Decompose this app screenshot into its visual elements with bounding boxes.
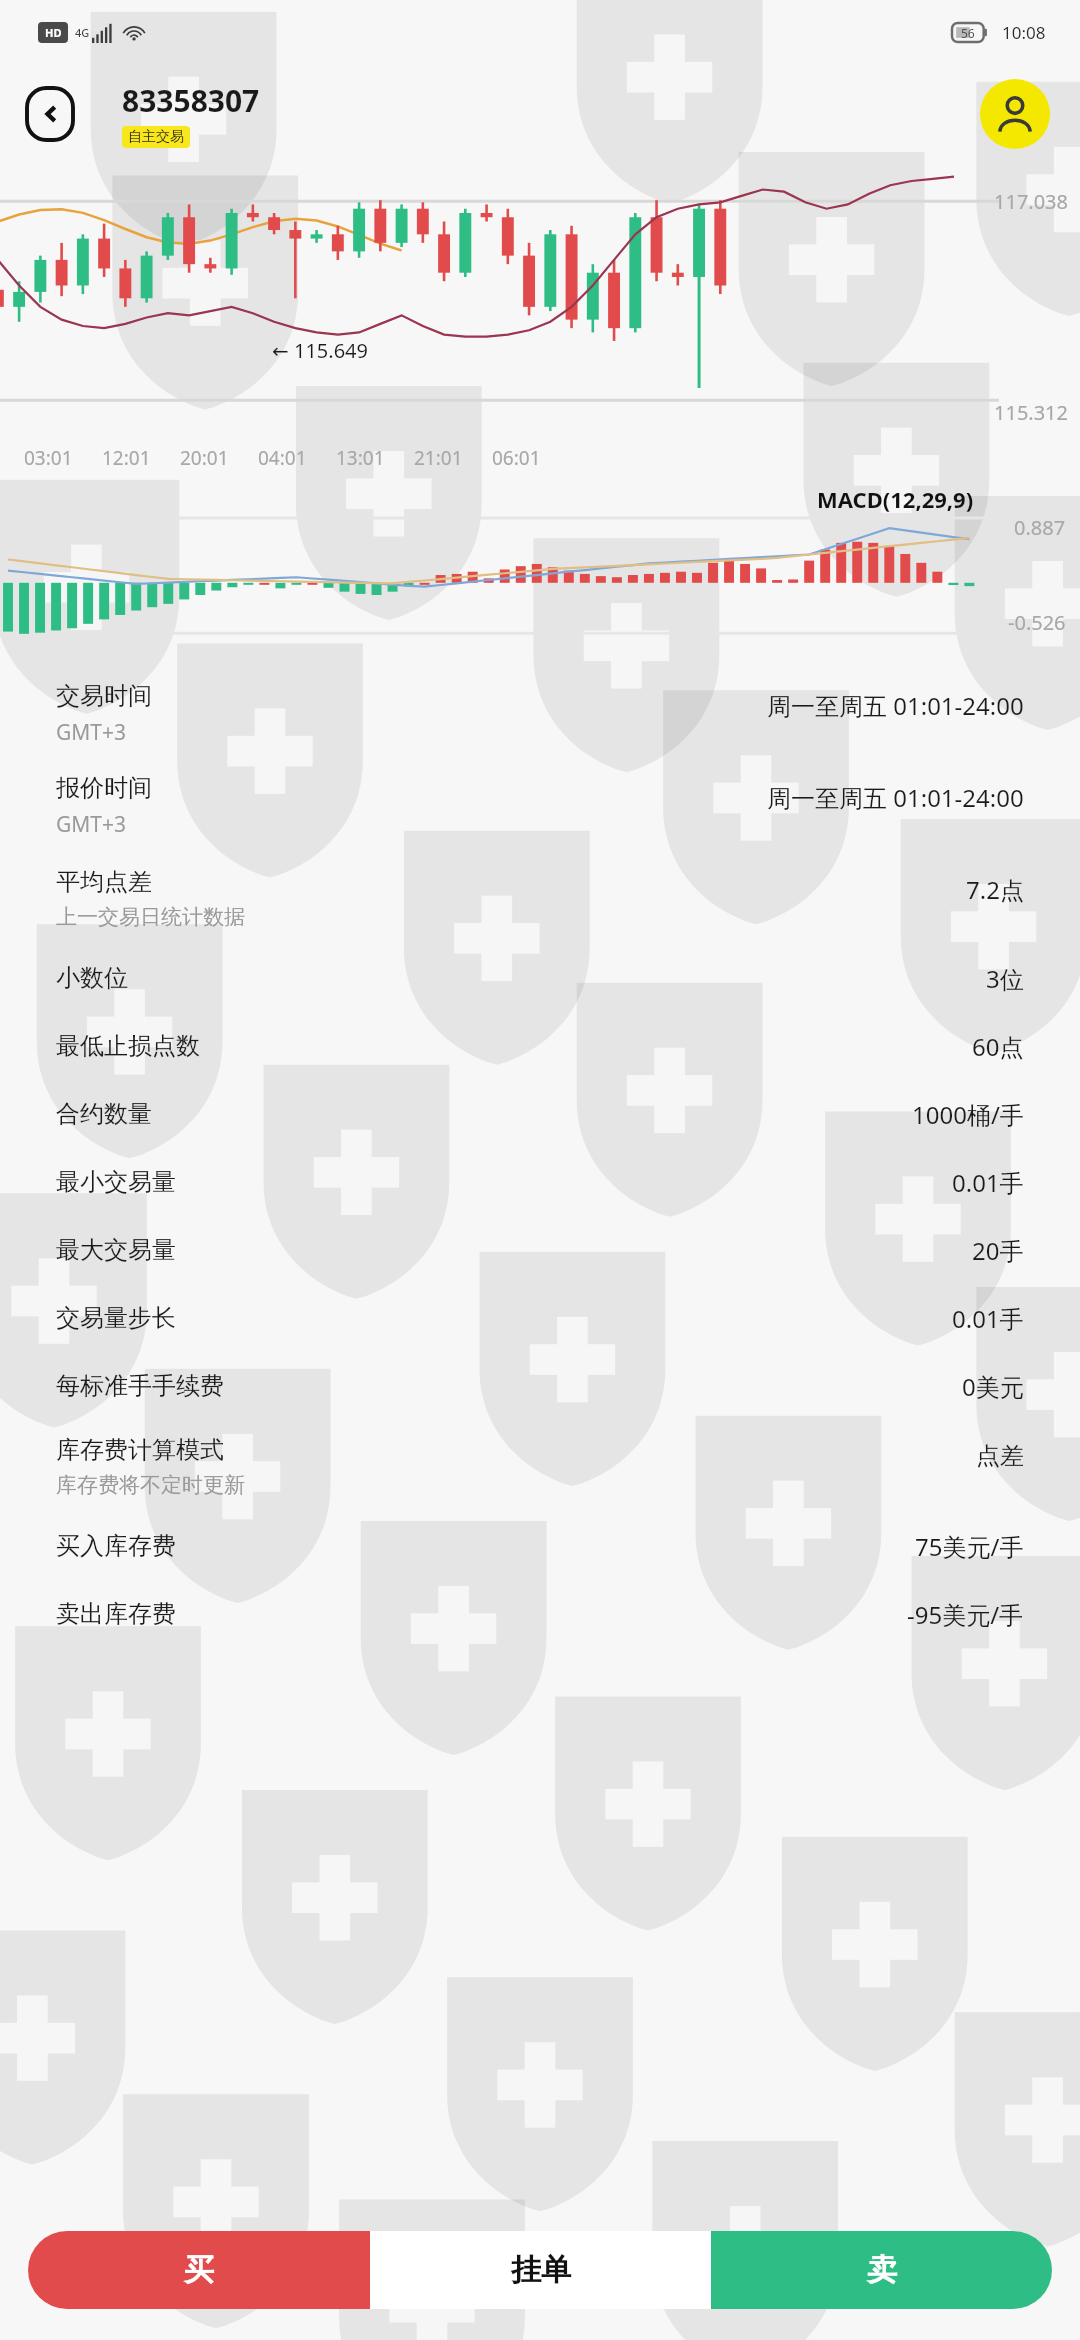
staticText: 最大交易量 <box>56 1235 176 1265</box>
staticText: 13:01 <box>336 445 385 471</box>
staticText: 周一至周五 01:01-24:00 <box>767 781 1024 814</box>
button[interactable]: 账户 <box>980 79 1050 149</box>
staticText: 20:01 <box>180 445 229 471</box>
staticText: 买 <box>184 2251 214 2289</box>
staticText: 04:01 <box>258 445 307 471</box>
staticText: 60点 <box>972 1030 1024 1063</box>
button[interactable]: 最低止损点数 <box>0 1012 1080 1080</box>
staticText: 83358307 <box>122 80 260 121</box>
button[interactable]: 报价时间 <box>0 760 1080 852</box>
staticText: 75美元/手 <box>915 1530 1024 1563</box>
button[interactable]: 买 <box>28 2231 370 2309</box>
staticText: -0.526 <box>1008 609 1066 636</box>
staticText: -95美元/手 <box>907 1598 1024 1631</box>
button[interactable]: 小数位 <box>0 944 1080 1012</box>
staticText: 3位 <box>986 962 1024 995</box>
staticText: 12:01 <box>102 445 151 471</box>
staticText: 库存费计算模式 <box>56 1435 224 1465</box>
button[interactable]: 库存费计算模式 <box>0 1420 1080 1512</box>
staticText: 1000桶/手 <box>912 1098 1024 1131</box>
staticText: 117.038 <box>994 188 1068 215</box>
button[interactable]: 买入库存费 <box>0 1512 1080 1580</box>
staticText: 报价时间 <box>56 773 152 803</box>
staticText: 点差 <box>976 1441 1024 1471</box>
staticText: 7.2点 <box>966 873 1024 906</box>
button[interactable]: 挂单 <box>370 2231 711 2309</box>
staticText: 平均点差 <box>56 867 152 897</box>
staticText: 每标准手手续费 <box>56 1371 224 1401</box>
staticText: 115.312 <box>994 399 1068 426</box>
staticText: 买入库存费 <box>56 1531 176 1561</box>
staticText: 10:08 <box>1002 21 1046 44</box>
staticText: 0.01手 <box>952 1166 1024 1199</box>
staticText: 卖 <box>867 2251 897 2289</box>
staticText: 自主交易 <box>128 128 184 146</box>
staticText: HD <box>45 25 62 40</box>
staticText: 56 <box>961 25 975 41</box>
button[interactable]: 最小交易量 <box>0 1148 1080 1216</box>
staticText: 周一至周五 01:01-24:00 <box>767 689 1024 722</box>
staticText: 交易量步长 <box>56 1303 176 1333</box>
staticText: ← 115.649 <box>272 337 368 364</box>
staticText: 上一交易日统计数据 <box>56 904 245 930</box>
button[interactable]: 卖出库存费 <box>0 1580 1080 1648</box>
button[interactable]: 交易量步长 <box>0 1284 1080 1352</box>
button[interactable]: 合约数量 <box>0 1080 1080 1148</box>
button[interactable]: 每标准手手续费 <box>0 1352 1080 1420</box>
button[interactable]: 卖 <box>711 2231 1052 2309</box>
staticText: 最低止损点数 <box>56 1031 200 1061</box>
staticText: 小数位 <box>56 963 128 993</box>
button[interactable]: 返回 <box>27 88 73 140</box>
staticText: 06:01 <box>492 445 541 471</box>
staticText: GMT+3 <box>56 810 127 839</box>
staticText: 挂单 <box>511 2251 571 2289</box>
staticText: GMT+3 <box>56 718 127 747</box>
staticText: MACD(12,29,9) <box>817 484 974 514</box>
staticText: 03:01 <box>24 445 73 471</box>
staticText: 0美元 <box>962 1370 1024 1403</box>
staticText: 20手 <box>972 1234 1024 1267</box>
button[interactable]: 交易时间 <box>0 668 1080 760</box>
staticText: 交易时间 <box>56 681 152 711</box>
staticText: 卖出库存费 <box>56 1599 176 1629</box>
staticText: 4G <box>75 25 90 40</box>
button[interactable]: 自主交易 <box>128 128 184 146</box>
staticText: 0.01手 <box>952 1302 1024 1335</box>
staticText: 0.887 <box>1014 514 1066 541</box>
button[interactable]: 平均点差 <box>0 852 1080 944</box>
staticText: 21:01 <box>414 445 463 471</box>
staticText: 库存费将不定时更新 <box>56 1472 245 1498</box>
button[interactable]: 最大交易量 <box>0 1216 1080 1284</box>
staticText: 合约数量 <box>56 1099 152 1129</box>
staticText: 最小交易量 <box>56 1167 176 1197</box>
